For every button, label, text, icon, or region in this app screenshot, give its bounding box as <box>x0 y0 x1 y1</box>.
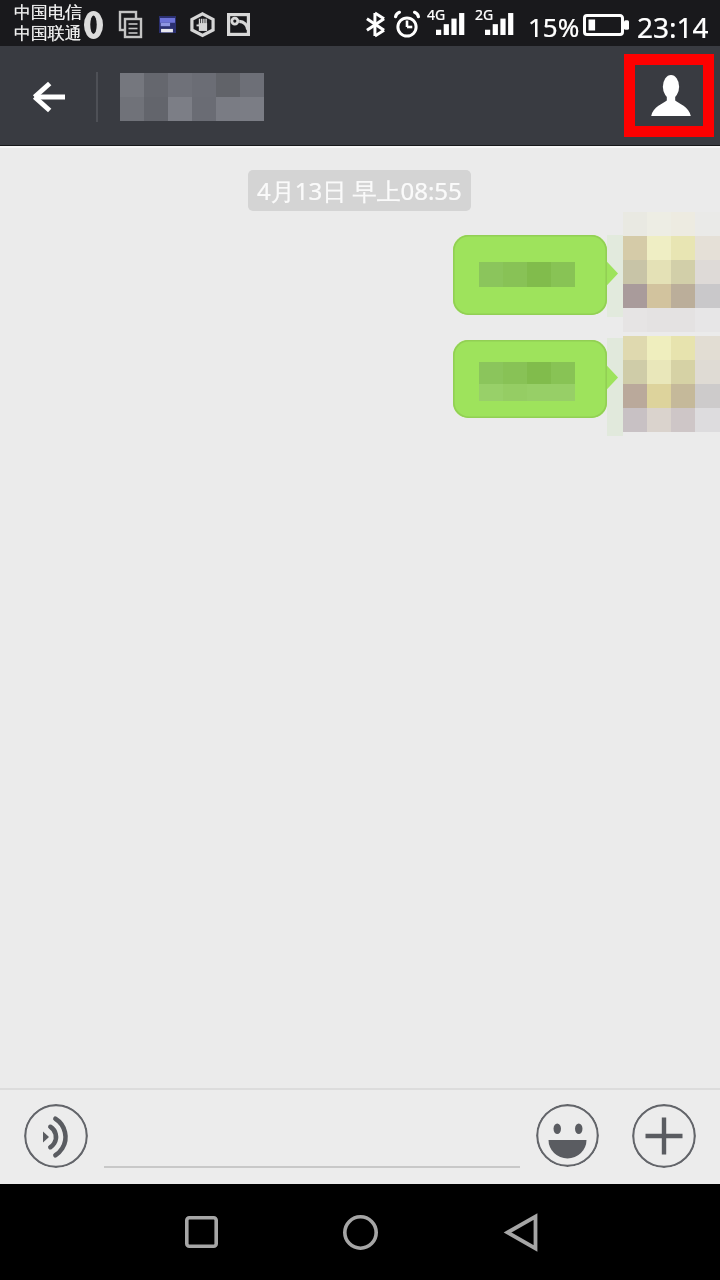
staticText: 中国电信 <box>14 2 82 23</box>
staticText: 4月13日 早上08:55 <box>257 174 462 207</box>
button[interactable] <box>453 235 618 315</box>
staticText: 中国联通 <box>14 23 82 44</box>
button[interactable]: 4月13日 早上08:55 <box>248 170 471 211</box>
staticText: 4G <box>427 5 446 24</box>
button[interactable] <box>453 340 618 418</box>
button[interactable]: Back <box>0 46 96 145</box>
staticText: 2G <box>475 5 494 24</box>
button[interactable]: Contact profile <box>624 54 714 137</box>
staticText: 23:14 <box>637 8 709 46</box>
button[interactable]: Avatar <box>623 336 720 432</box>
button[interactable]: Home <box>328 1184 393 1280</box>
button[interactable]: Emoji <box>536 1104 599 1167</box>
button[interactable]: More options <box>632 1104 696 1168</box>
button[interactable]: Recent apps <box>169 1184 234 1280</box>
button[interactable]: Back <box>489 1184 554 1280</box>
staticText: 15% <box>528 9 580 44</box>
button[interactable]: Avatar <box>623 212 720 332</box>
button[interactable]: Voice input <box>24 1104 88 1168</box>
